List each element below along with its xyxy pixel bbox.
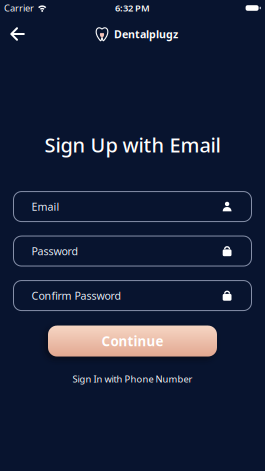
staticText: Password [31,244,78,258]
button[interactable]: Sign In with Phone Number [72,373,192,385]
button[interactable]: Continue [48,326,217,357]
button[interactable]: Back [0,27,25,41]
staticText: Continue [101,332,163,350]
staticText: Email [31,199,59,214]
staticText: Sign Up with Email [44,131,220,158]
button[interactable]: Password [13,236,251,266]
button[interactable]: Email [13,192,251,222]
staticText: 6:32 PM [115,2,150,14]
button[interactable]: Confirm Password [13,281,251,311]
staticText: Carrier [4,2,34,14]
staticText: Dentalplugz [114,27,178,41]
staticText: Confirm Password [31,288,121,303]
staticText: Sign In with Phone Number [72,373,192,385]
